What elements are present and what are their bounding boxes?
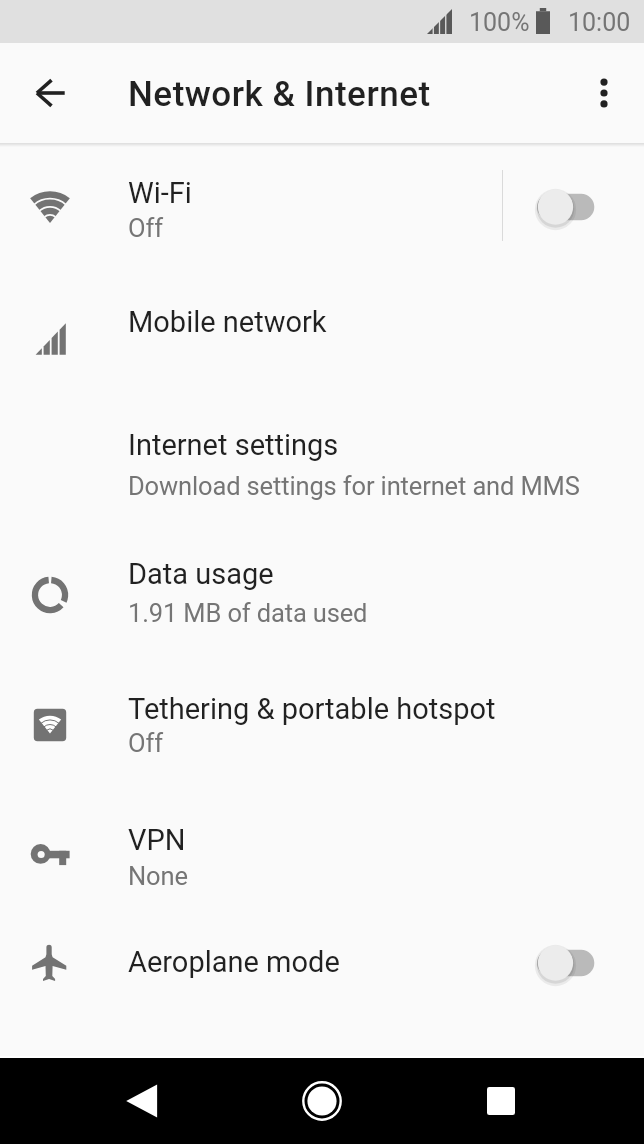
button[interactable]: Mobile network: [0, 273, 644, 401]
staticText: Mobile network: [128, 305, 327, 339]
button[interactable]: Navigate up: [26, 69, 74, 117]
button[interactable]: Wi-Fi toggle: [520, 172, 620, 242]
button[interactable]: VPN: [0, 790, 644, 908]
staticText: Internet settings: [128, 428, 339, 462]
staticText: Off: [128, 728, 163, 758]
button[interactable]: Tethering & portable hotspot: [0, 658, 644, 790]
button[interactable]: More options: [580, 69, 628, 117]
other: Mobile signal full: [427, 9, 452, 34]
button[interactable]: Data usage: [0, 528, 644, 658]
button[interactable]: Aeroplane mode: [0, 908, 644, 1015]
staticText: Wi-Fi: [128, 176, 192, 210]
staticText: 10:00: [568, 8, 631, 37]
button[interactable]: Aeroplane mode toggle: [520, 928, 620, 998]
other: Battery full: [536, 8, 550, 34]
staticText: Aeroplane mode: [128, 945, 340, 979]
button[interactable]: Wi-Fi: [0, 143, 644, 273]
staticText: Network & Internet: [128, 74, 431, 115]
staticText: Off: [128, 213, 163, 243]
staticText: Download settings for internet and MMS: [128, 471, 580, 501]
staticText: VPN: [128, 823, 186, 857]
button[interactable]: Home: [289, 1068, 355, 1134]
button[interactable]: Internet settings: [0, 401, 644, 528]
staticText: 1.91 MB of data used: [128, 598, 368, 628]
staticText: None: [128, 861, 188, 891]
staticText: 100%: [469, 8, 530, 37]
staticText: Data usage: [128, 557, 274, 591]
staticText: Tethering & portable hotspot: [128, 692, 496, 726]
button[interactable]: Recent apps: [468, 1068, 534, 1134]
button[interactable]: Back: [110, 1068, 176, 1134]
